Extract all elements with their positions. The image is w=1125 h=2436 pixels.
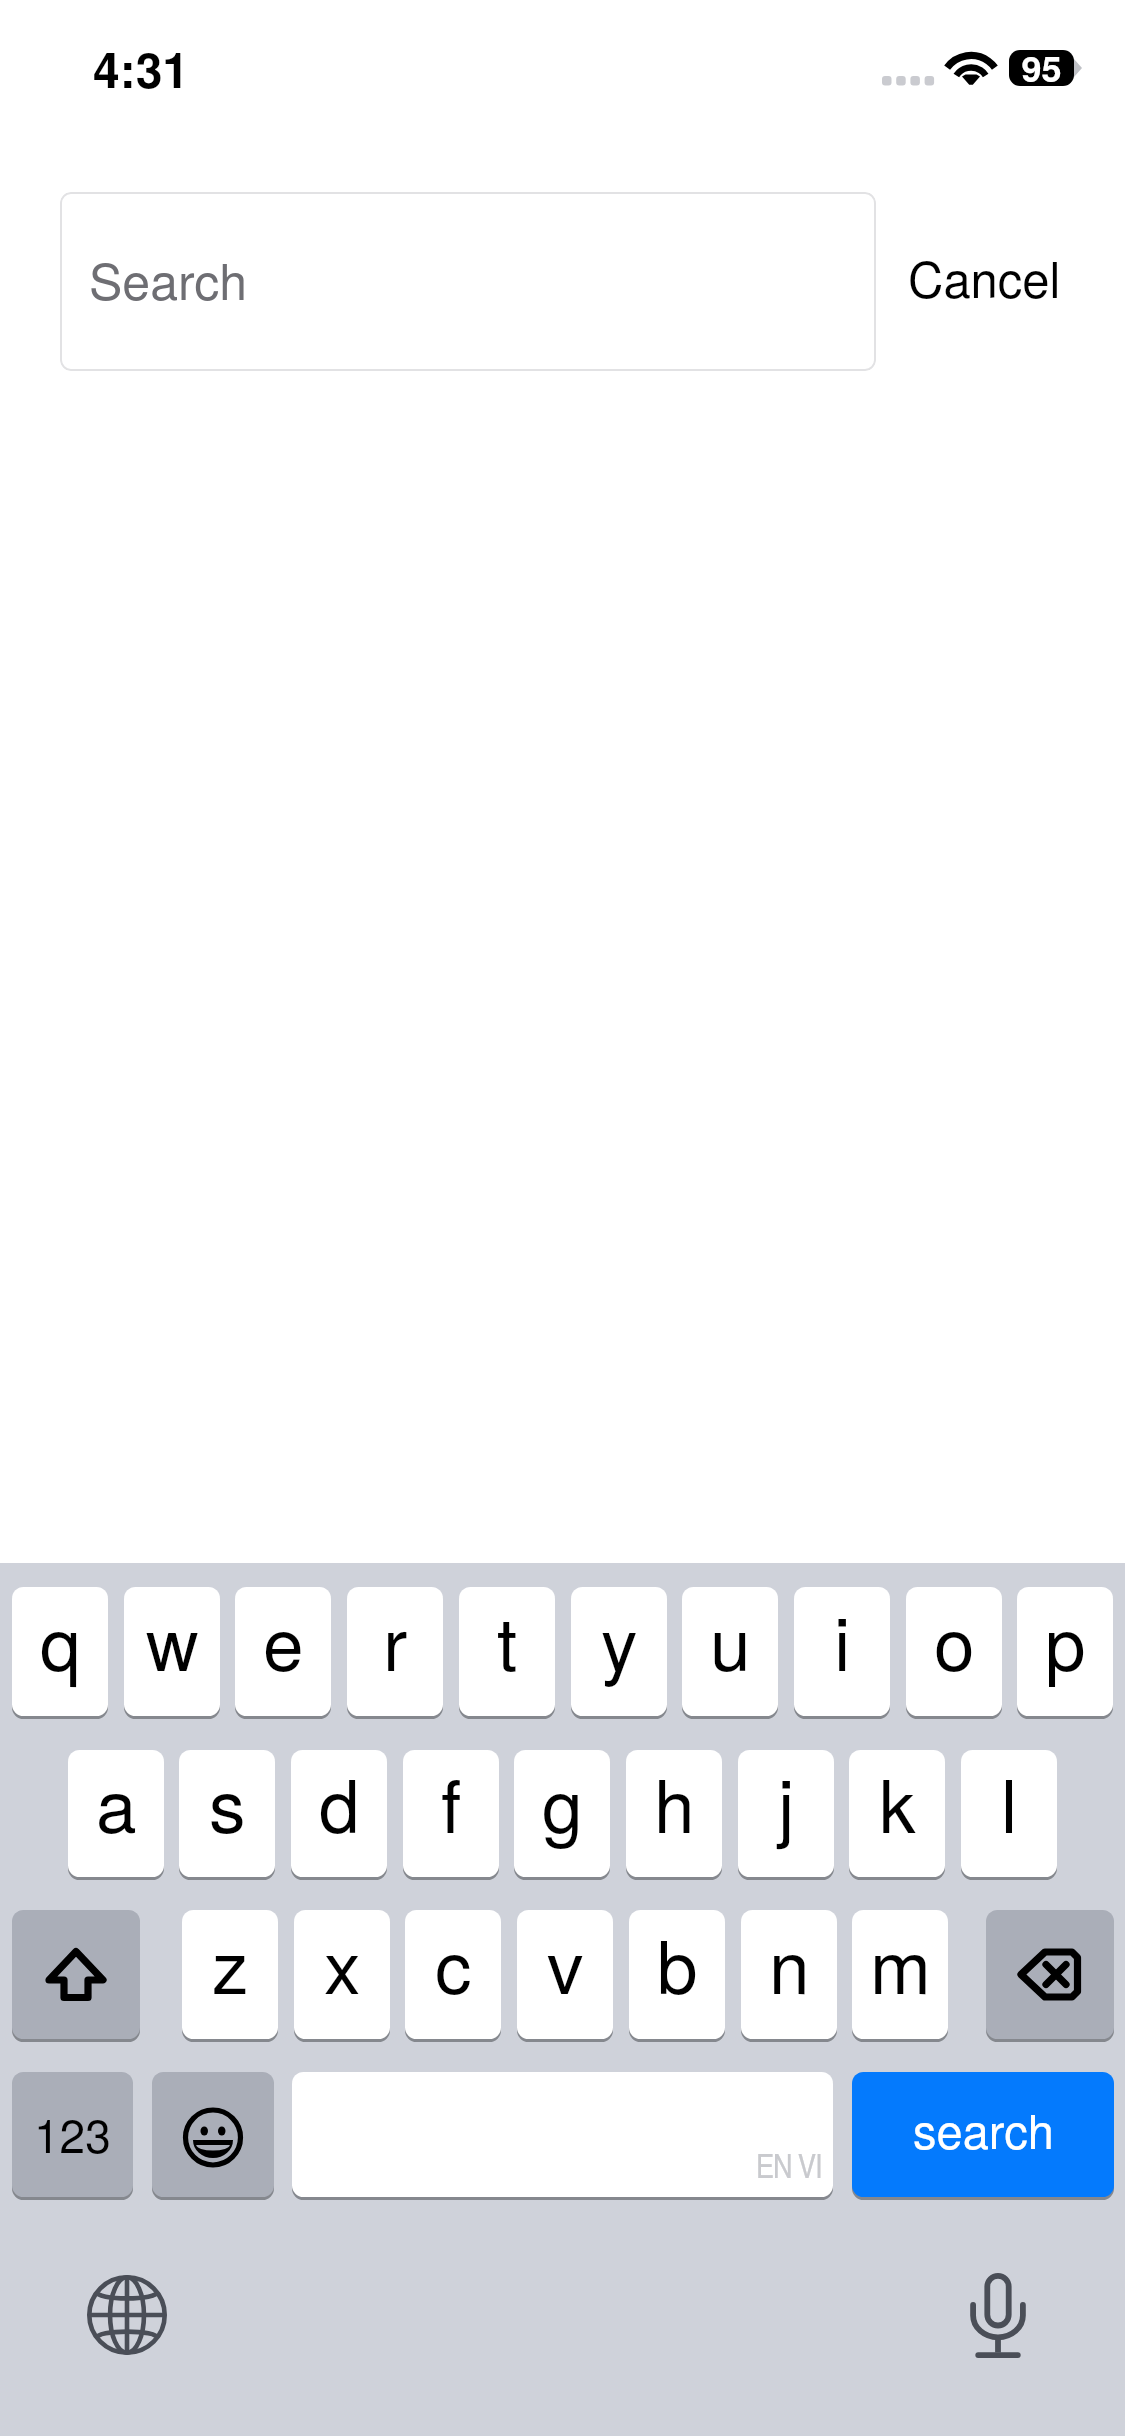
- button[interactable]: Shift: [12, 1910, 140, 2039]
- button[interactable]: Change keyboard language: [87, 2275, 167, 2355]
- staticText: p: [1045, 1587, 1086, 1692]
- button[interactable]: space: [292, 2072, 833, 2197]
- button[interactable]: g: [514, 1750, 610, 1877]
- button[interactable]: o: [906, 1587, 1002, 1716]
- staticText: z: [212, 1910, 249, 2015]
- staticText: x: [324, 1910, 361, 2015]
- button[interactable]: Dictate: [958, 2263, 1038, 2363]
- staticText: a: [96, 1750, 137, 1854]
- staticText: 123: [34, 2100, 111, 2166]
- button[interactable]: k: [849, 1750, 945, 1877]
- staticText: d: [319, 1750, 360, 1854]
- button[interactable]: r: [347, 1587, 443, 1716]
- staticText: search: [913, 2095, 1054, 2162]
- button[interactable]: Cancel: [888, 187, 1080, 366]
- staticText: r: [383, 1587, 408, 1692]
- button[interactable]: f: [403, 1750, 499, 1877]
- button[interactable]: d: [291, 1750, 387, 1877]
- button[interactable]: 123: [12, 2072, 133, 2197]
- staticText: c: [435, 1910, 472, 2015]
- button[interactable]: s: [179, 1750, 275, 1877]
- button[interactable]: b: [629, 1910, 725, 2039]
- staticText: h: [654, 1750, 695, 1854]
- staticText: u: [710, 1587, 751, 1692]
- staticText: t: [497, 1587, 518, 1692]
- button[interactable]: a: [68, 1750, 164, 1877]
- button[interactable]: t: [459, 1587, 555, 1716]
- button[interactable]: y: [571, 1587, 667, 1716]
- staticText: g: [542, 1750, 583, 1854]
- staticText: s: [209, 1750, 246, 1854]
- button[interactable]: j: [738, 1750, 834, 1877]
- staticText: i: [834, 1587, 851, 1692]
- button[interactable]: n: [741, 1910, 837, 2039]
- staticText: 4:31: [93, 34, 190, 103]
- button[interactable]: i: [794, 1587, 890, 1716]
- button[interactable]: c: [405, 1910, 501, 2039]
- staticText: y: [601, 1587, 638, 1692]
- staticText: b: [657, 1910, 698, 2015]
- staticText: f: [441, 1750, 462, 1854]
- button[interactable]: h: [626, 1750, 722, 1877]
- button[interactable]: q: [12, 1587, 108, 1716]
- staticText: o: [934, 1587, 975, 1692]
- button[interactable]: l: [961, 1750, 1057, 1877]
- button[interactable]: z: [182, 1910, 278, 2039]
- staticText: Cancel: [908, 242, 1061, 312]
- button[interactable]: x: [294, 1910, 390, 2039]
- staticText: 95: [1013, 41, 1070, 93]
- button[interactable]: p: [1017, 1587, 1113, 1716]
- staticText: k: [879, 1750, 916, 1854]
- staticText: e: [263, 1587, 304, 1692]
- staticText: l: [1001, 1750, 1018, 1854]
- button[interactable]: v: [517, 1910, 613, 2039]
- button[interactable]: Search: [60, 192, 876, 371]
- staticText: Search: [89, 243, 248, 315]
- staticText: n: [769, 1910, 810, 2015]
- staticText: j: [778, 1750, 795, 1854]
- button[interactable]: u: [682, 1587, 778, 1716]
- button[interactable]: e: [235, 1587, 331, 1716]
- staticText: EN VI: [756, 2142, 822, 2187]
- button[interactable]: search: [852, 2072, 1114, 2197]
- staticText: q: [40, 1587, 81, 1692]
- button[interactable]: Backspace: [986, 1910, 1114, 2039]
- staticText: m: [870, 1910, 931, 2015]
- button[interactable]: m: [852, 1910, 948, 2039]
- staticText: w: [146, 1587, 199, 1692]
- button[interactable]: w: [124, 1587, 220, 1716]
- button[interactable]: Emoji: [152, 2072, 274, 2197]
- staticText: v: [547, 1910, 584, 2015]
